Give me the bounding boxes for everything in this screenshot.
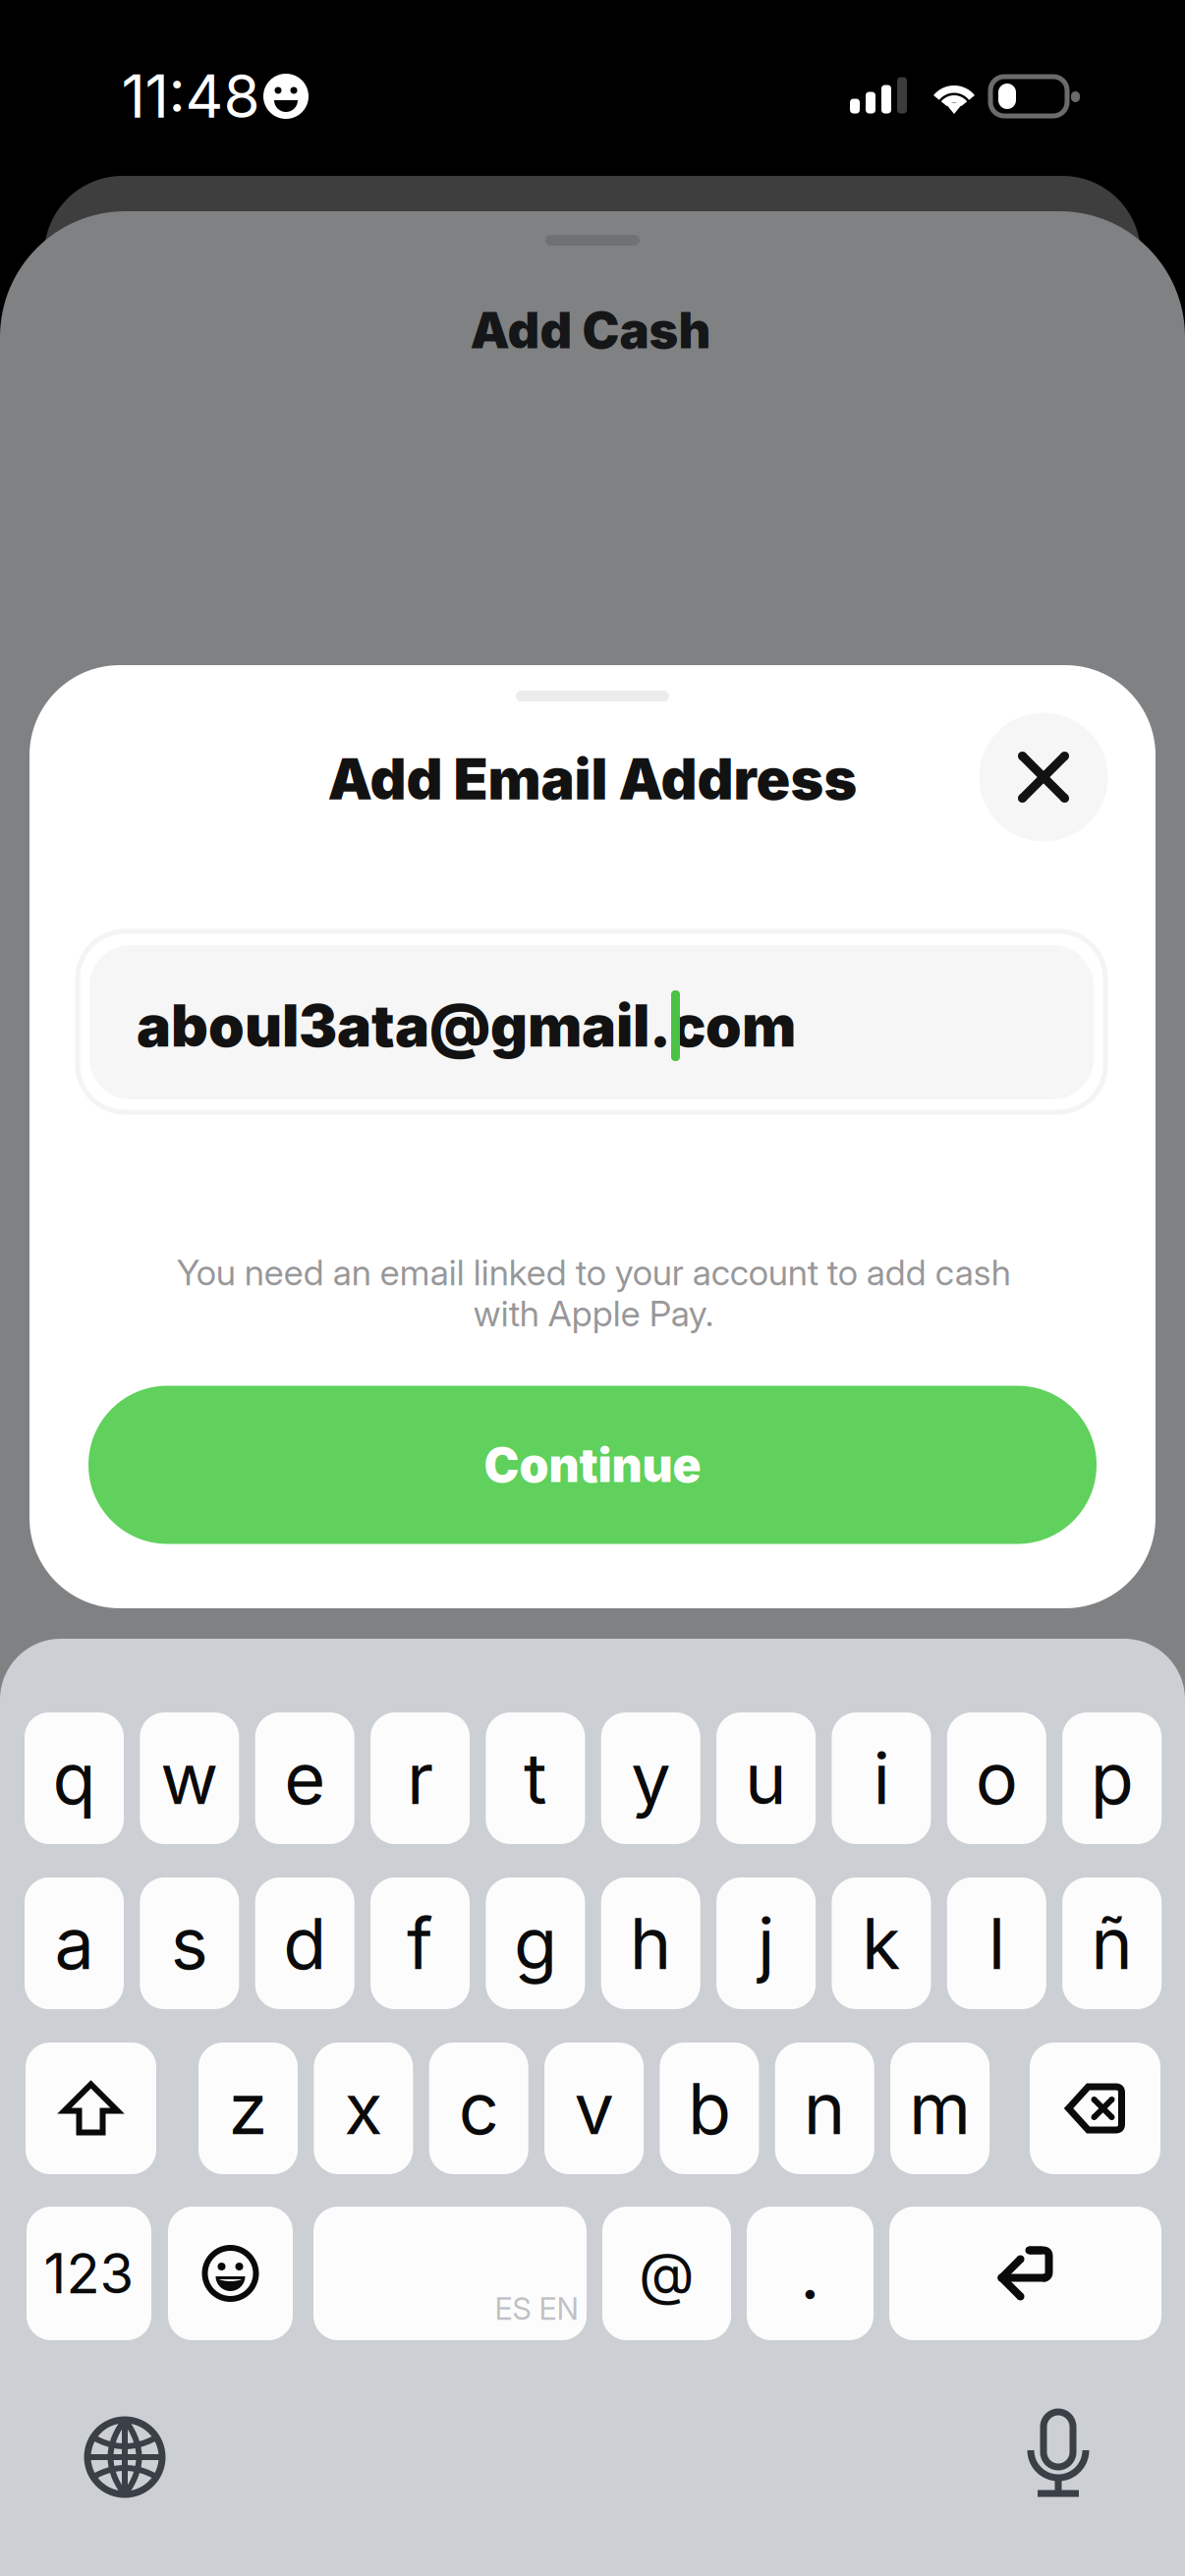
staticText: e <box>284 1735 325 1821</box>
staticText: d <box>283 1900 326 1986</box>
staticText: g <box>514 1900 557 1986</box>
staticText: j <box>758 1900 774 1986</box>
button[interactable]: m <box>890 2043 990 2174</box>
button[interactable]: Shift <box>26 2043 156 2174</box>
button[interactable]: k <box>832 1877 931 2009</box>
staticText: v <box>574 2066 614 2151</box>
button[interactable]: Continue <box>88 1386 1097 1544</box>
button[interactable]: Space <box>313 2207 587 2340</box>
staticText: ñ <box>1091 1900 1133 1986</box>
button[interactable]: g <box>486 1877 585 2009</box>
button[interactable]: i <box>832 1712 931 1844</box>
staticText: You need an email linked to your account… <box>176 1251 1011 1335</box>
staticText: y <box>631 1735 670 1821</box>
staticText: s <box>171 1900 208 1986</box>
button[interactable]: c <box>429 2043 528 2174</box>
staticText: m <box>909 2066 971 2151</box>
staticText: i <box>873 1735 890 1821</box>
staticText: c <box>459 2066 499 2151</box>
button[interactable]: v <box>544 2043 644 2174</box>
button[interactable]: Emoji <box>168 2207 293 2340</box>
staticText: z <box>228 2066 268 2151</box>
button[interactable]: Dictate <box>1028 2409 1089 2499</box>
staticText: w <box>160 1735 218 1821</box>
button[interactable]: l <box>947 1877 1046 2009</box>
button[interactable]: r <box>370 1712 470 1844</box>
staticText: Continue <box>484 1436 701 1493</box>
button[interactable]: b <box>660 2043 759 2174</box>
button[interactable]: p <box>1062 1712 1162 1844</box>
button[interactable]: h <box>601 1877 700 2009</box>
button[interactable]: x <box>314 2043 413 2174</box>
staticText: ES EN <box>495 2290 578 2327</box>
staticText: 123 <box>44 2240 134 2307</box>
button[interactable]: u <box>716 1712 816 1844</box>
button[interactable]: Return <box>889 2207 1161 2340</box>
button[interactable]: o <box>947 1712 1046 1844</box>
staticText: aboul3ata@gmail.com <box>137 991 796 1061</box>
button[interactable]: d <box>255 1877 354 2009</box>
button[interactable]: a <box>25 1877 124 2009</box>
staticText: r <box>407 1735 433 1821</box>
button[interactable]: Close <box>979 713 1108 841</box>
staticText: u <box>745 1735 787 1821</box>
button[interactable]: Delete <box>1030 2043 1160 2174</box>
staticText: l <box>988 1900 1005 1986</box>
button[interactable]: w <box>140 1712 239 1844</box>
staticText: h <box>630 1900 672 1986</box>
staticText: Add Cash <box>470 300 711 360</box>
staticText: k <box>862 1900 901 1986</box>
staticText: x <box>344 2066 383 2151</box>
button[interactable]: q <box>25 1712 124 1844</box>
button[interactable]: f <box>370 1877 470 2009</box>
staticText: . <box>800 2231 820 2316</box>
staticText: q <box>53 1735 96 1821</box>
button[interactable]: n <box>775 2043 874 2174</box>
staticText: n <box>804 2066 846 2151</box>
button[interactable]: Next keyboard <box>85 2417 165 2497</box>
button[interactable]: @ <box>602 2207 731 2340</box>
staticText: 11:48 <box>121 61 260 132</box>
staticText: @ <box>639 2239 695 2308</box>
button[interactable]: z <box>198 2043 298 2174</box>
staticText: f <box>407 1900 433 1986</box>
button[interactable]: e <box>255 1712 354 1844</box>
staticText: a <box>55 1900 94 1986</box>
button[interactable]: ñ <box>1062 1877 1162 2009</box>
staticText: o <box>976 1735 1018 1821</box>
button[interactable]: . <box>747 2207 874 2340</box>
staticText: p <box>1090 1735 1134 1821</box>
staticText: t <box>524 1735 547 1821</box>
button[interactable]: s <box>140 1877 239 2009</box>
button[interactable]: y <box>601 1712 700 1844</box>
button[interactable]: 123 <box>27 2207 151 2340</box>
button[interactable]: t <box>486 1712 585 1844</box>
staticText: Add Email Address <box>328 745 857 813</box>
staticText: b <box>688 2066 731 2151</box>
button[interactable]: j <box>716 1877 816 2009</box>
